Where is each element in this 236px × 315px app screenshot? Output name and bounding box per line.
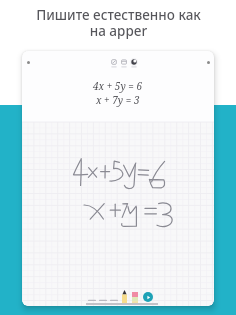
button[interactable]: Clear (110, 295, 118, 303)
button[interactable]: Insert (108, 58, 120, 70)
button[interactable]: Send (143, 292, 153, 302)
button[interactable]: Eraser (132, 292, 138, 304)
button[interactable]: Redo (99, 295, 107, 303)
staticText: Пишите естественно как на apper (36, 6, 201, 40)
button[interactable]: Pencil (122, 290, 127, 304)
button[interactable]: Draw (128, 58, 140, 70)
button[interactable]: Undo (88, 295, 96, 303)
button[interactable]: Layout (118, 58, 130, 70)
staticText: 4x + 5y = 6 (93, 79, 143, 93)
staticText: x + 7y = 3 (96, 93, 140, 107)
